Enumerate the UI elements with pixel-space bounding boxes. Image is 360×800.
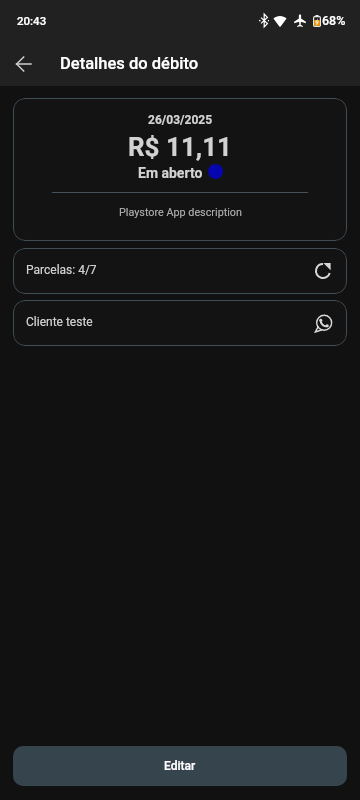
staticText: Parcelas: 4/7 bbox=[26, 263, 97, 277]
staticText: 26/03/2025 bbox=[148, 113, 213, 127]
staticText: Playstore App description bbox=[119, 206, 242, 219]
staticText: 68% bbox=[322, 13, 346, 28]
staticText: Em aberto bbox=[138, 165, 203, 181]
staticText: Cliente teste bbox=[26, 315, 93, 329]
button[interactable]: Refresh bbox=[310, 258, 336, 284]
staticText: 20:43 bbox=[17, 14, 47, 27]
button[interactable]: Cliente teste bbox=[13, 300, 347, 346]
button[interactable]: WhatsApp bbox=[310, 310, 336, 336]
staticText: Detalhes do débito bbox=[60, 54, 199, 73]
button[interactable]: Back bbox=[1, 42, 45, 86]
button[interactable]: 26/03/2025 bbox=[13, 98, 347, 241]
staticText: R$ 11,11 bbox=[128, 132, 233, 162]
staticText: Editar bbox=[164, 759, 196, 773]
button[interactable]: Editar bbox=[13, 746, 347, 786]
button[interactable]: Parcelas: 4/7 bbox=[13, 248, 347, 294]
